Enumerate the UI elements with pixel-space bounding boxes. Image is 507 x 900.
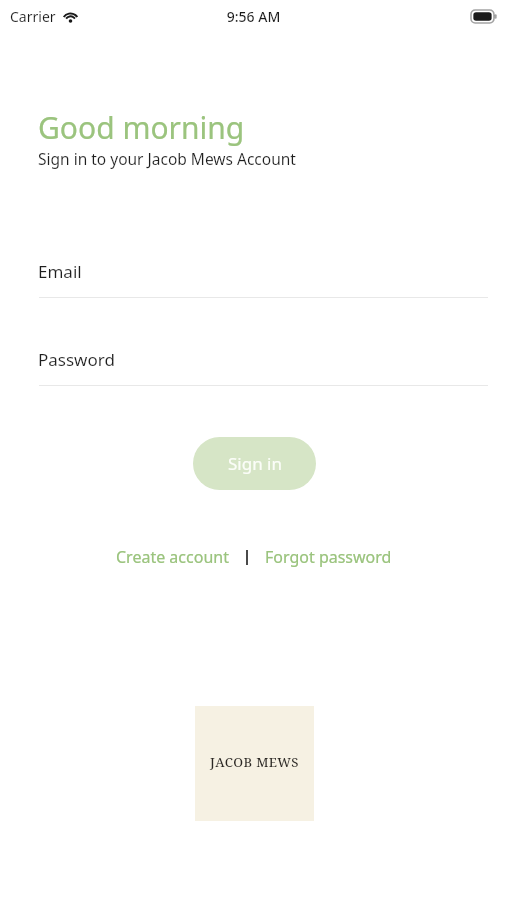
button[interactable]: Forgot password (261, 541, 396, 573)
button[interactable]: Email (38, 260, 488, 298)
staticText: Password (38, 348, 115, 371)
staticText: Forgot password (265, 546, 392, 568)
button[interactable]: Jacob Mews logo (195, 706, 314, 821)
button[interactable]: Create account (112, 541, 233, 573)
staticText: 9:56 AM (0, 7, 507, 26)
staticText: Email (38, 260, 82, 283)
staticText: JACOB MEWS (210, 753, 299, 771)
staticText: Sign in to your Jacob Mews Account (38, 148, 296, 169)
other: Battery full (471, 10, 498, 23)
staticText: Create account (116, 546, 229, 568)
staticText: Carrier (10, 7, 56, 26)
staticText: Sign in (228, 452, 282, 475)
staticText: Good morning (38, 107, 245, 148)
button[interactable]: Password (38, 348, 488, 386)
button[interactable]: Sign in (193, 437, 316, 490)
other: Wi-Fi signal (62, 9, 79, 23)
